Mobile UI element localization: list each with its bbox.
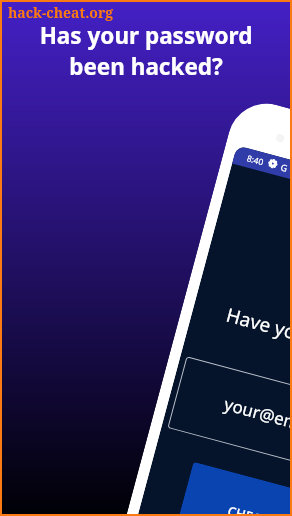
other: Promo frame (0, 0, 292, 516)
staticText: hack-cheat.org (8, 3, 114, 22)
staticText: Has your password been hacked? (0, 20, 292, 90)
staticText: your@email.com (222, 392, 292, 449)
button[interactable]: CHECK NOW (173, 462, 292, 516)
staticText: CHECK NOW (226, 502, 292, 516)
staticText: G (279, 160, 289, 174)
staticText: 8:40 (245, 152, 265, 168)
staticText: Have you been hacked? (223, 302, 292, 381)
button[interactable]: your@email.com (167, 356, 292, 516)
other: Settings (267, 158, 278, 169)
